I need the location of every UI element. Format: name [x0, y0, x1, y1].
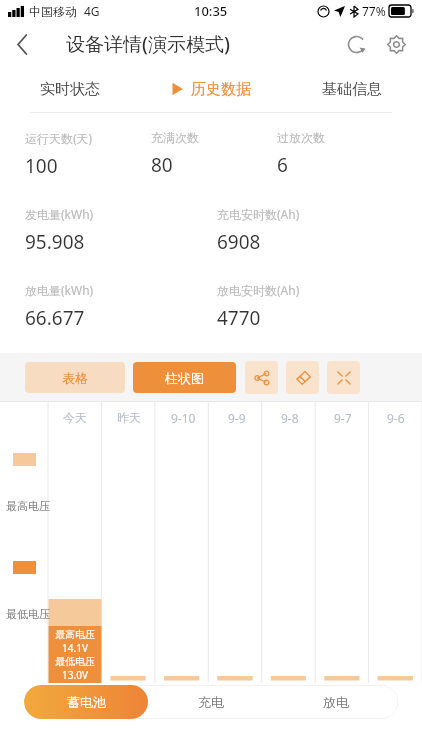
button[interactable]: 历史数据 — [140, 66, 281, 112]
staticText: 9-9 — [228, 410, 246, 426]
button[interactable]: Collapse — [327, 361, 360, 394]
staticText: 9-10 — [171, 410, 196, 426]
button[interactable]: Refresh — [334, 22, 378, 66]
staticText: 中国移动 — [29, 4, 77, 19]
staticText: 实时状态 — [40, 80, 100, 99]
button[interactable]: 实时状态 — [0, 66, 140, 112]
button[interactable]: 放电 — [273, 685, 398, 719]
staticText: 80 — [151, 152, 173, 178]
staticText: 表格 — [62, 370, 88, 386]
staticText: 历史数据 — [191, 80, 251, 99]
button[interactable]: 表格 — [25, 362, 125, 393]
staticText: 9-8 — [281, 410, 299, 426]
staticText: 最低电压 — [6, 607, 50, 621]
button[interactable]: 基础信息 — [281, 66, 422, 112]
staticText: 95.908 — [25, 229, 85, 255]
staticText: 最高电压 — [55, 628, 95, 641]
staticText: 设备详情(演示模式) — [66, 31, 230, 57]
staticText: 9-6 — [387, 410, 405, 426]
staticText: 充满次数 — [151, 130, 199, 145]
staticText: 放电 — [323, 694, 349, 710]
staticText: 13.0V — [62, 668, 88, 682]
staticText: 4770 — [217, 305, 261, 331]
button[interactable]: Brush — [286, 361, 319, 394]
button[interactable]: Share — [245, 361, 278, 394]
staticText: 6 — [277, 152, 288, 178]
staticText: 柱状图 — [165, 370, 204, 386]
button[interactable]: Settings — [378, 22, 414, 66]
staticText: 过放次数 — [277, 130, 325, 145]
staticText: 昨天 — [117, 410, 141, 425]
staticText: 充电安时数(Ah) — [217, 206, 300, 222]
staticText: 放电量(kWh) — [25, 282, 94, 298]
staticText: 9-7 — [334, 410, 352, 426]
staticText: 4G — [84, 3, 100, 19]
staticText: 77% — [362, 3, 386, 19]
staticText: 100 — [25, 153, 58, 179]
staticText: 最高电压 — [6, 499, 50, 513]
staticText: 运行天数(天) — [25, 130, 93, 146]
staticText: 最低电压 — [55, 655, 95, 668]
staticText: 蓄电池 — [67, 694, 106, 710]
staticText: 今天 — [63, 410, 87, 425]
staticText: 14.1V — [62, 641, 88, 655]
staticText: 66.677 — [25, 305, 85, 331]
staticText: 充电 — [198, 694, 224, 710]
staticText: 发电量(kWh) — [25, 206, 94, 222]
button[interactable]: 柱状图 — [133, 362, 236, 393]
staticText: 放电安时数(Ah) — [217, 282, 300, 298]
button[interactable]: 蓄电池 — [24, 685, 148, 719]
staticText: 10:35 — [194, 2, 228, 20]
staticText: 6908 — [217, 229, 261, 255]
button[interactable]: 充电 — [148, 685, 273, 719]
staticText: 基础信息 — [322, 80, 382, 99]
button[interactable]: Back — [0, 22, 44, 66]
